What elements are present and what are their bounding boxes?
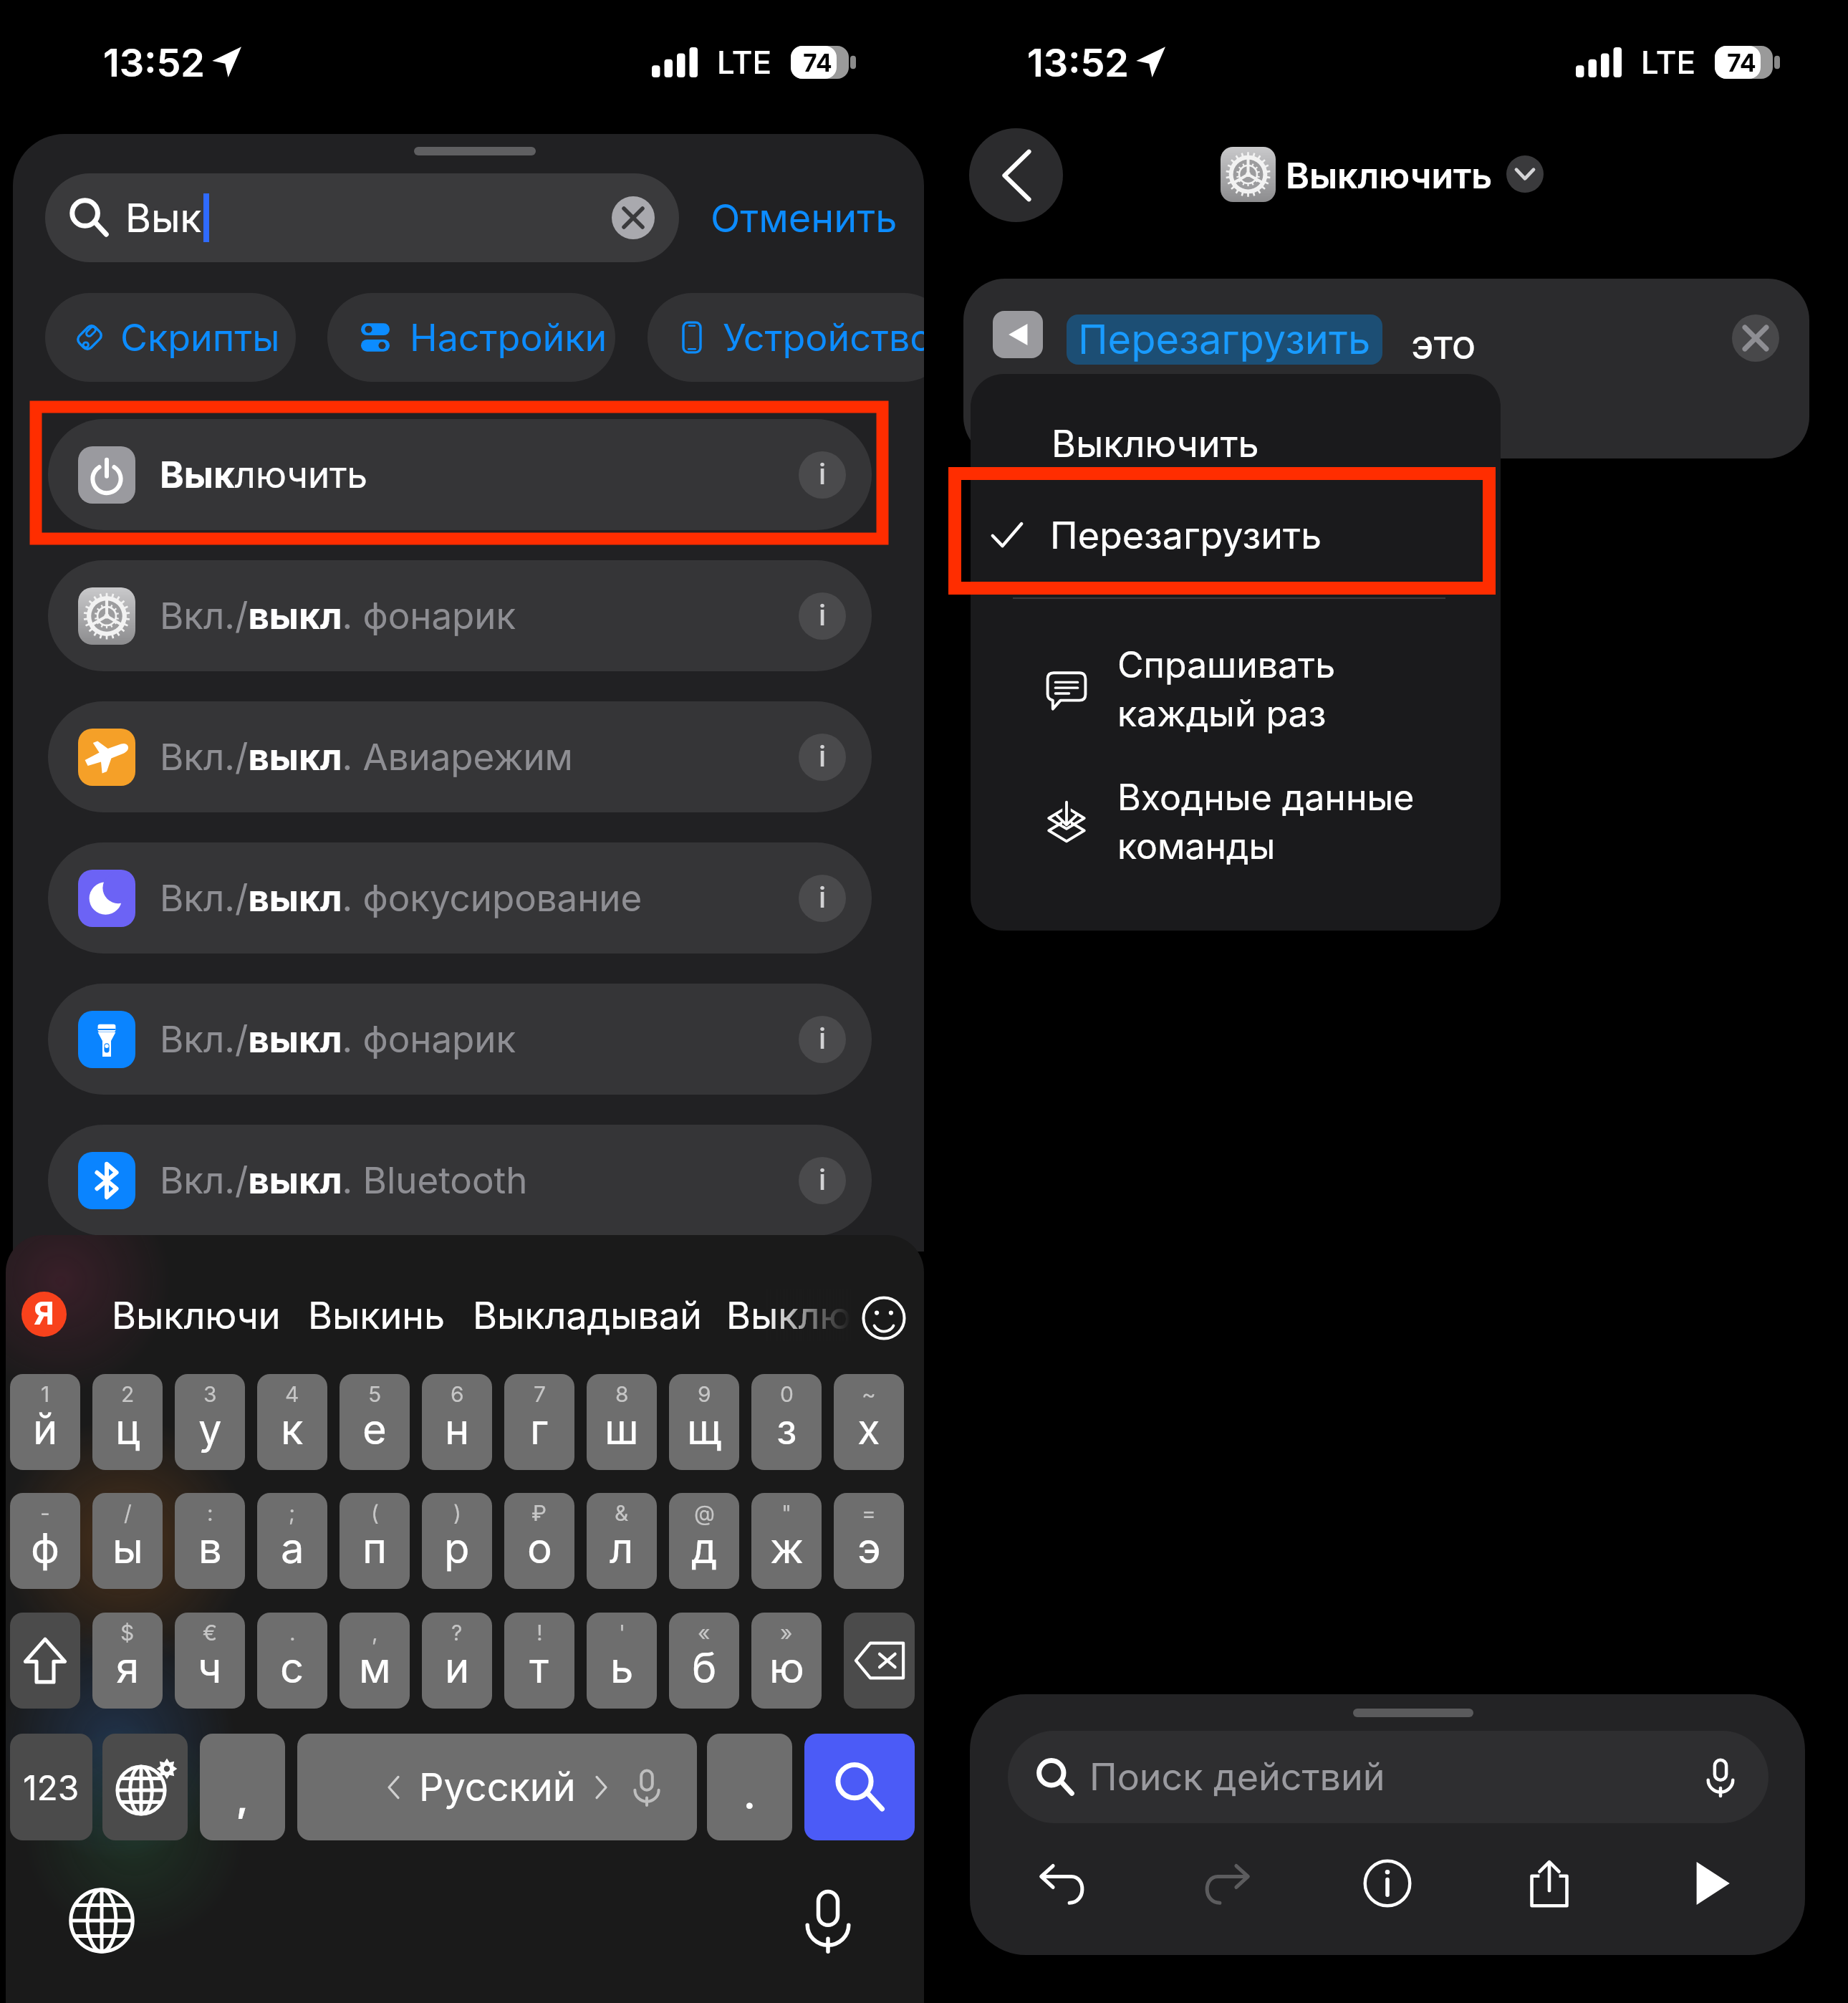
staticText: Выкинь: [308, 1293, 446, 1338]
button[interactable]: Устройство: [648, 293, 924, 382]
button[interactable]: Remove: [1732, 314, 1779, 362]
button[interactable]: Backspace: [844, 1613, 915, 1709]
button[interactable]: ~: [834, 1374, 904, 1470]
button[interactable]: Search: [804, 1734, 915, 1840]
button[interactable]: Перезагрузить: [971, 489, 1501, 582]
staticText: Выключить: [160, 453, 368, 497]
button[interactable]: Выключи: [112, 1289, 281, 1341]
button[interactable]: Shift: [10, 1613, 80, 1709]
button[interactable]: .: [707, 1734, 792, 1840]
button[interactable]: (: [340, 1493, 410, 1589]
button[interactable]: Входные данные команды: [971, 764, 1501, 879]
button[interactable]: Redo: [1186, 1844, 1265, 1923]
button[interactable]: Вкл./выкл. Bluetooth: [48, 1125, 872, 1236]
button[interactable]: Keyboard settings: [102, 1734, 188, 1840]
staticText: Вык: [125, 194, 202, 242]
button[interactable]: :: [175, 1493, 245, 1589]
button[interactable]: Emoji: [861, 1295, 907, 1341]
staticText: это: [1411, 320, 1476, 369]
button[interactable]: 2: [92, 1374, 163, 1470]
button[interactable]: ': [587, 1613, 657, 1709]
button[interactable]: 5: [340, 1374, 410, 1470]
button[interactable]: Dictation: [791, 1883, 865, 1958]
button[interactable]: Previous token: [993, 311, 1043, 358]
button[interactable]: !: [504, 1613, 574, 1709]
button[interactable]: $: [92, 1613, 163, 1709]
button[interactable]: Отменить: [701, 173, 908, 262]
button[interactable]: 6: [422, 1374, 492, 1470]
button[interactable]: Русский: [297, 1734, 697, 1840]
button[interactable]: Run: [1672, 1844, 1751, 1923]
button[interactable]: /: [92, 1493, 163, 1589]
button[interactable]: More options: [1506, 155, 1544, 193]
staticText: ,: [372, 1620, 378, 1646]
staticText: /: [124, 1500, 132, 1526]
button[interactable]: €: [175, 1613, 245, 1709]
button[interactable]: ,: [200, 1734, 285, 1840]
button[interactable]: 123: [10, 1734, 92, 1840]
button[interactable]: ?: [422, 1613, 492, 1709]
button[interactable]: Скрипты: [45, 293, 296, 382]
staticText: н: [445, 1404, 470, 1454]
button[interactable]: &: [587, 1493, 657, 1589]
button[interactable]: «: [669, 1613, 739, 1709]
staticText: .: [289, 1620, 296, 1646]
button[interactable]: Вкл./выкл. фокусирование: [48, 842, 872, 954]
button[interactable]: Info: [799, 734, 846, 781]
button[interactable]: Clear text: [612, 196, 655, 239]
button[interactable]: Info: [799, 875, 846, 922]
button[interactable]: Вкл./выкл. Авиарежим: [48, 701, 872, 812]
button[interactable]: Search field: [45, 173, 679, 262]
button[interactable]: Спрашивать каждый раз: [971, 632, 1501, 746]
button[interactable]: ;: [257, 1493, 327, 1589]
button[interactable]: Info: [799, 1016, 846, 1063]
button[interactable]: Перезагрузить: [1067, 314, 1382, 365]
staticText: ф: [31, 1523, 60, 1573]
button[interactable]: ,: [340, 1613, 410, 1709]
button[interactable]: @: [669, 1493, 739, 1589]
button[interactable]: Выключи: [726, 1289, 851, 1341]
button[interactable]: Info: [1348, 1844, 1427, 1923]
button[interactable]: 7: [504, 1374, 574, 1470]
button[interactable]: Change keyboard: [64, 1883, 139, 1958]
button[interactable]: Вкл./выкл. фонарик: [48, 560, 872, 671]
button[interactable]: Поиск действий: [1008, 1731, 1768, 1823]
button[interactable]: Выключить: [48, 419, 872, 530]
button[interactable]: -: [10, 1493, 80, 1589]
button[interactable]: Info: [799, 451, 846, 499]
button[interactable]: Настройки: [327, 293, 615, 382]
staticText: 13:52: [103, 39, 206, 86]
button[interactable]: 3: [175, 1374, 245, 1470]
button[interactable]: Выкладывай: [473, 1289, 702, 1341]
button[interactable]: Info: [799, 592, 846, 640]
button[interactable]: Share: [1510, 1844, 1589, 1923]
staticText: э: [857, 1523, 881, 1573]
button[interactable]: 0: [751, 1374, 822, 1470]
button[interactable]: ₽: [504, 1493, 574, 1589]
button[interactable]: Yandex: [21, 1292, 67, 1337]
staticText: р: [444, 1523, 470, 1573]
button[interactable]: 9: [669, 1374, 739, 1470]
staticText: в: [198, 1523, 222, 1573]
button[interactable]: 1: [10, 1374, 80, 1470]
button[interactable]: Вкл./выкл. фонарик: [48, 984, 872, 1095]
button[interactable]: Undo: [1024, 1844, 1103, 1923]
button[interactable]: Выкинь: [308, 1289, 446, 1341]
button[interactable]: .: [257, 1613, 327, 1709]
button[interactable]: Back: [969, 128, 1063, 222]
staticText: ;: [289, 1500, 296, 1526]
button[interactable]: Выключить: [971, 411, 1501, 476]
staticText: -: [40, 1500, 50, 1526]
staticText: 74: [803, 48, 832, 77]
button[interactable]: 8: [587, 1374, 657, 1470]
button[interactable]: 4: [257, 1374, 327, 1470]
button[interactable]: ": [751, 1493, 822, 1589]
staticText: 6: [451, 1381, 464, 1407]
button[interactable]: ): [422, 1493, 492, 1589]
staticText: @: [694, 1500, 715, 1526]
staticText: ,: [236, 1777, 249, 1820]
staticText: Вкл./выкл. фонарик: [160, 1017, 516, 1062]
button[interactable]: =: [834, 1493, 904, 1589]
button[interactable]: »: [751, 1613, 822, 1709]
button[interactable]: Info: [799, 1157, 846, 1204]
